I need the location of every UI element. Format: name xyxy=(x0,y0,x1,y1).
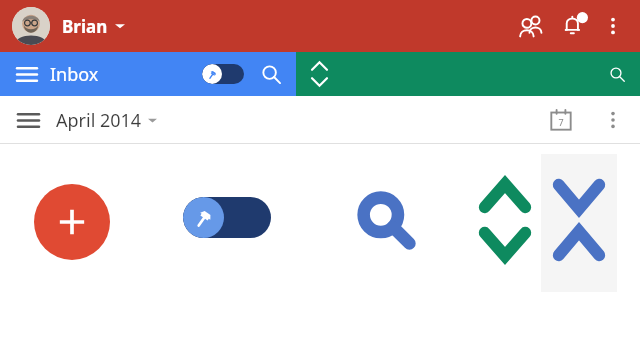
staticText: April 2014 xyxy=(56,108,142,133)
button[interactable]: Collapse xyxy=(551,177,607,263)
button[interactable]: Expand xyxy=(477,177,533,263)
button[interactable]: Menu xyxy=(10,102,46,138)
button[interactable]: Add xyxy=(34,184,110,260)
staticText: Inbox xyxy=(50,62,99,87)
button[interactable]: More options xyxy=(596,9,630,43)
button[interactable]: Search xyxy=(602,59,632,89)
button[interactable]: Search xyxy=(254,57,288,91)
button[interactable]: Pin toggle xyxy=(202,64,244,84)
button[interactable]: Expand xyxy=(304,59,334,89)
button[interactable]: Notifications xyxy=(552,4,596,48)
button[interactable]: People xyxy=(508,4,552,48)
button[interactable]: Brian xyxy=(12,7,131,45)
button[interactable]: More options xyxy=(594,101,632,139)
button[interactable]: Search xyxy=(355,189,417,251)
button[interactable]: Menu xyxy=(10,57,44,91)
button[interactable]: Today xyxy=(540,99,582,141)
button[interactable]: Pin toggle xyxy=(183,197,271,238)
button[interactable]: April 2014 xyxy=(52,102,161,139)
staticText: Brian xyxy=(62,15,108,38)
staticText: 7 xyxy=(558,116,564,128)
